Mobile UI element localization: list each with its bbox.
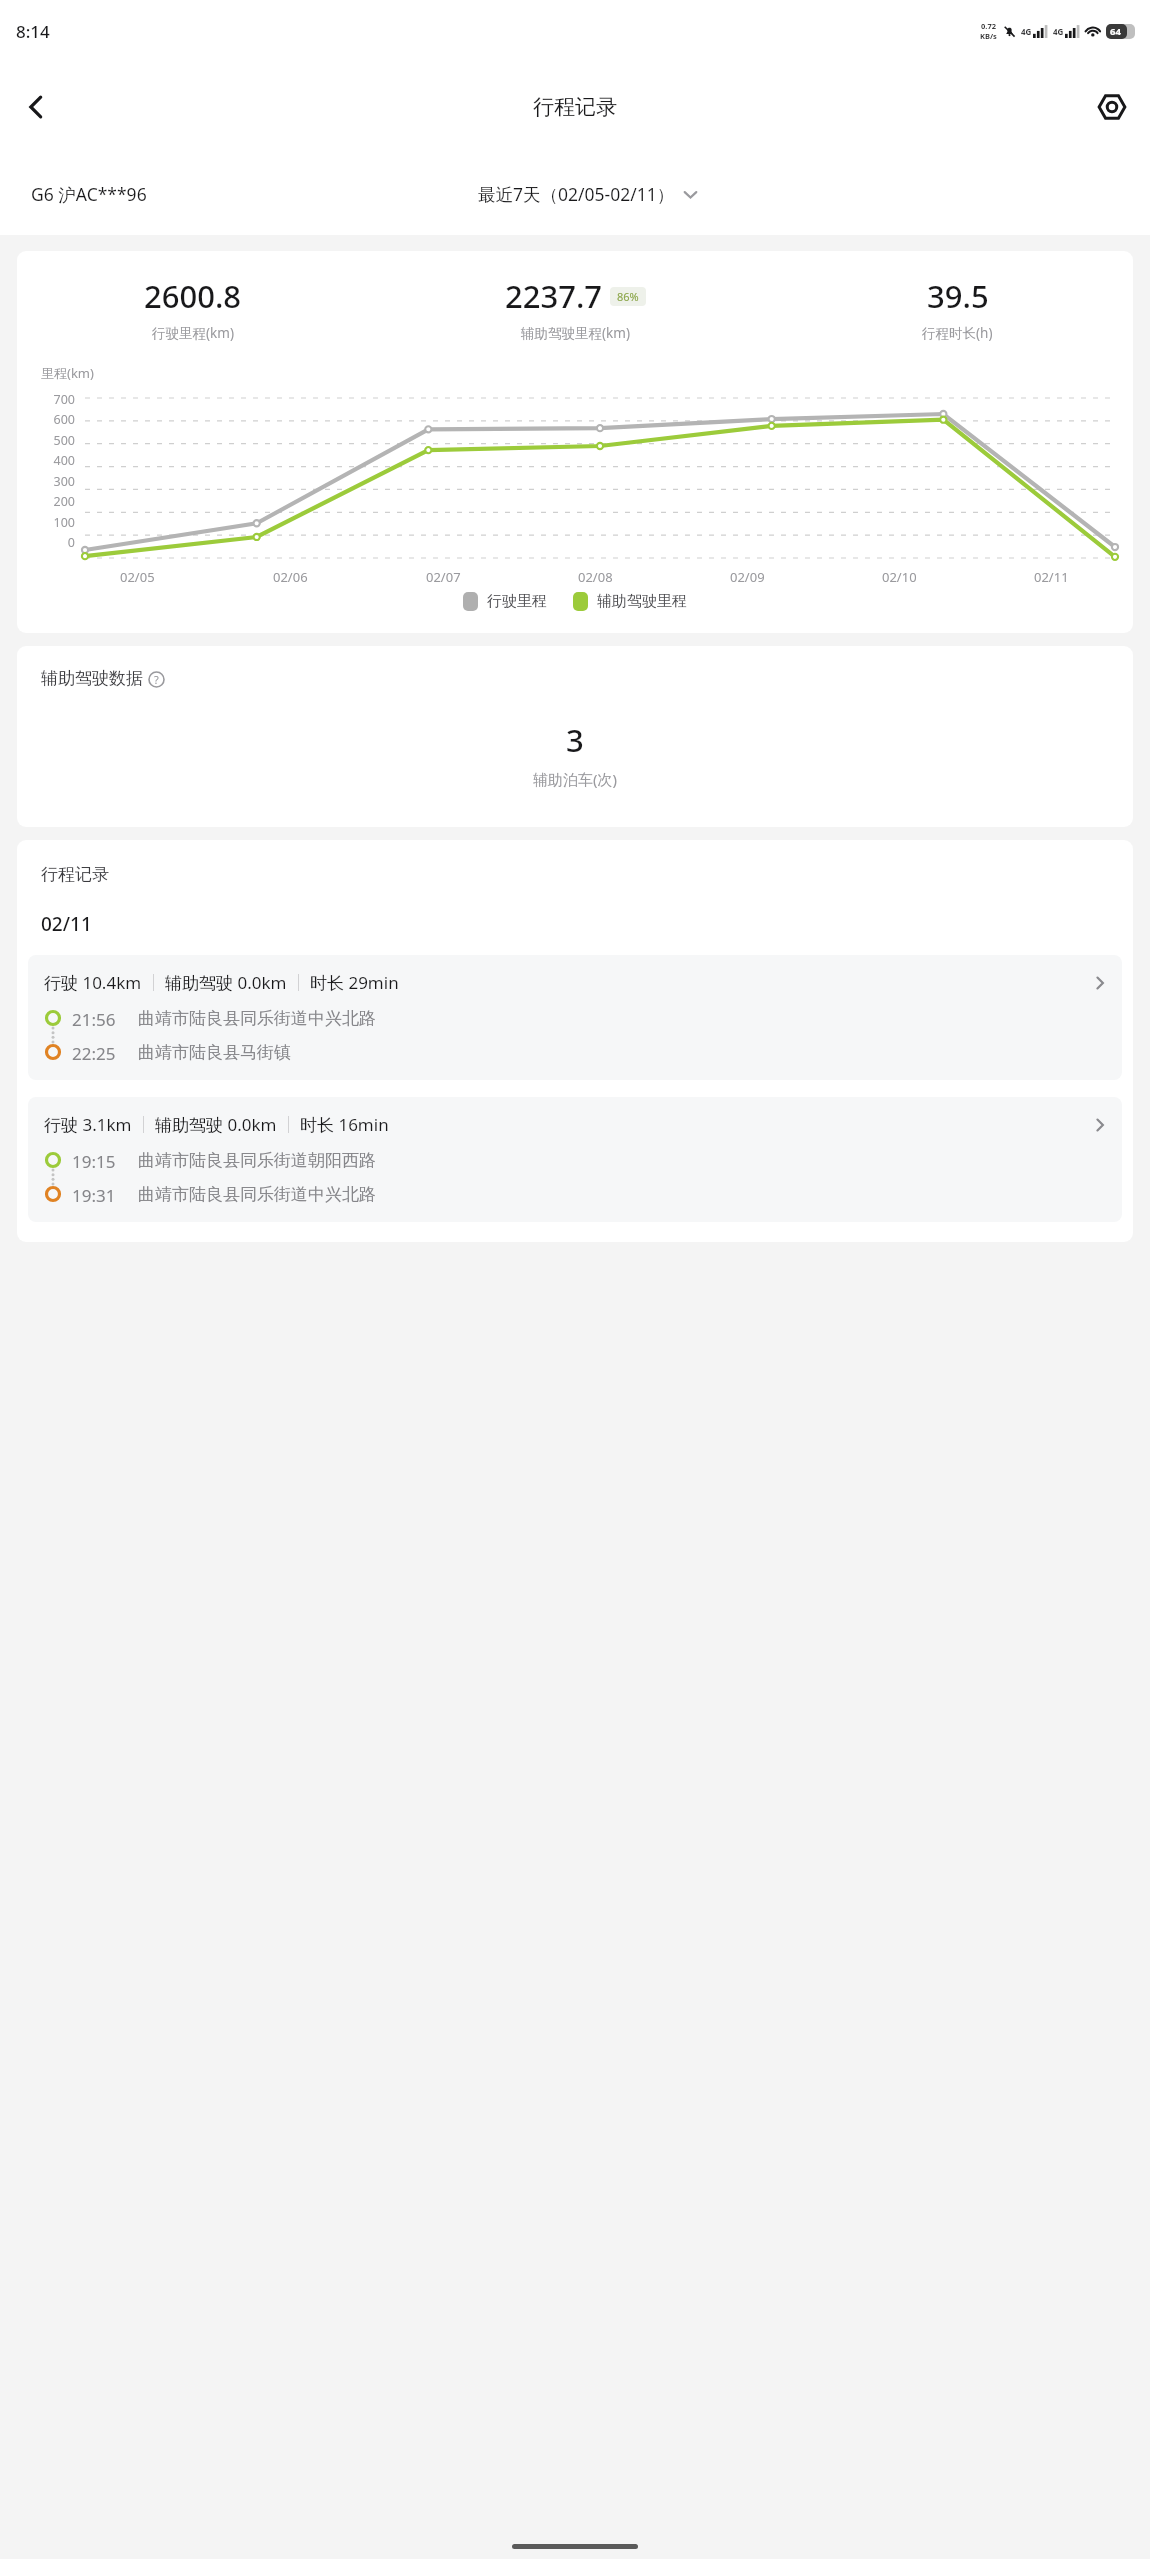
staticText: 300 [53,473,75,490]
staticText: 行驶里程 [487,592,547,611]
button[interactable]: 辅助驾驶里程 [573,592,687,611]
staticText: 时长 16min [300,1113,389,1136]
button[interactable]: Back [8,79,64,135]
staticText: 64 [1110,25,1121,38]
staticText: 曲靖市陆良县马街镇 [138,1042,291,1062]
staticText: ? [154,672,159,687]
staticText: 200 [53,493,75,510]
staticText: 曲靖市陆良县同乐街道中兴北路 [138,1008,376,1028]
staticText: 辅助驾驶 0.0km [155,1113,277,1136]
button[interactable]: Settings [1084,79,1140,135]
staticText: 8:14 [16,20,50,43]
staticText: 曲靖市陆良县同乐街道中兴北路 [138,1184,376,1204]
button[interactable]: 行驶 3.1km [28,1097,1122,1222]
staticText: 行驶 10.4km [44,971,142,994]
button[interactable]: 行驶里程 [463,592,547,611]
staticText: 21:56 [72,1008,116,1028]
button[interactable]: 最近7天（02/05-02/11） [478,182,699,206]
staticText: 3 [566,719,584,761]
staticText: 02/06 [273,568,308,586]
staticText: 02/10 [882,568,917,586]
staticText: 4G [1053,26,1064,37]
staticText: 0.72 [981,21,996,31]
staticText: 行程记录 [41,864,109,885]
staticText: 22:25 [72,1042,116,1062]
staticText: 0 [67,534,75,551]
staticText: 行驶里程(km) [152,324,234,342]
staticText: 02/08 [578,568,613,586]
staticText: 02/09 [730,568,765,586]
staticText: 500 [53,432,75,449]
staticText: 700 [53,391,75,408]
staticText: 行程记录 [533,94,617,120]
staticText: 02/11 [1034,568,1069,586]
staticText: 时长 29min [310,971,399,994]
staticText: 里程(km) [41,364,94,382]
staticText: 2600.8 [144,275,242,317]
staticText: 02/11 [41,911,92,937]
staticText: 辅助驾驶数据 [41,668,143,689]
button[interactable]: Help [146,669,166,689]
staticText: 400 [53,452,75,469]
staticText: 曲靖市陆良县同乐街道朝阳西路 [138,1150,376,1170]
staticText: 19:15 [72,1150,116,1170]
staticText: 辅助泊车(次) [533,769,618,789]
staticText: 100 [53,514,75,531]
button[interactable]: 行驶 10.4km [28,955,1122,1080]
staticText: 600 [53,411,75,428]
staticText: KB/s [980,31,997,41]
staticText: 辅助驾驶里程 [597,592,687,611]
staticText: 19:31 [72,1184,116,1204]
staticText: 辅助驾驶里程(km) [521,324,630,342]
staticText: 02/05 [120,568,155,586]
staticText: 86% [617,289,639,304]
staticText: 4G [1021,26,1032,37]
staticText: 2237.7 [505,275,603,317]
button[interactable]: G6 沪AC***96 [31,182,147,206]
staticText: 行程时长(h) [922,324,993,342]
staticText: 辅助驾驶 0.0km [165,971,287,994]
staticText: 最近7天（02/05-02/11） [478,182,675,206]
staticText: 39.5 [927,275,989,317]
staticText: 02/07 [426,568,461,586]
staticText: 行驶 3.1km [44,1113,132,1136]
